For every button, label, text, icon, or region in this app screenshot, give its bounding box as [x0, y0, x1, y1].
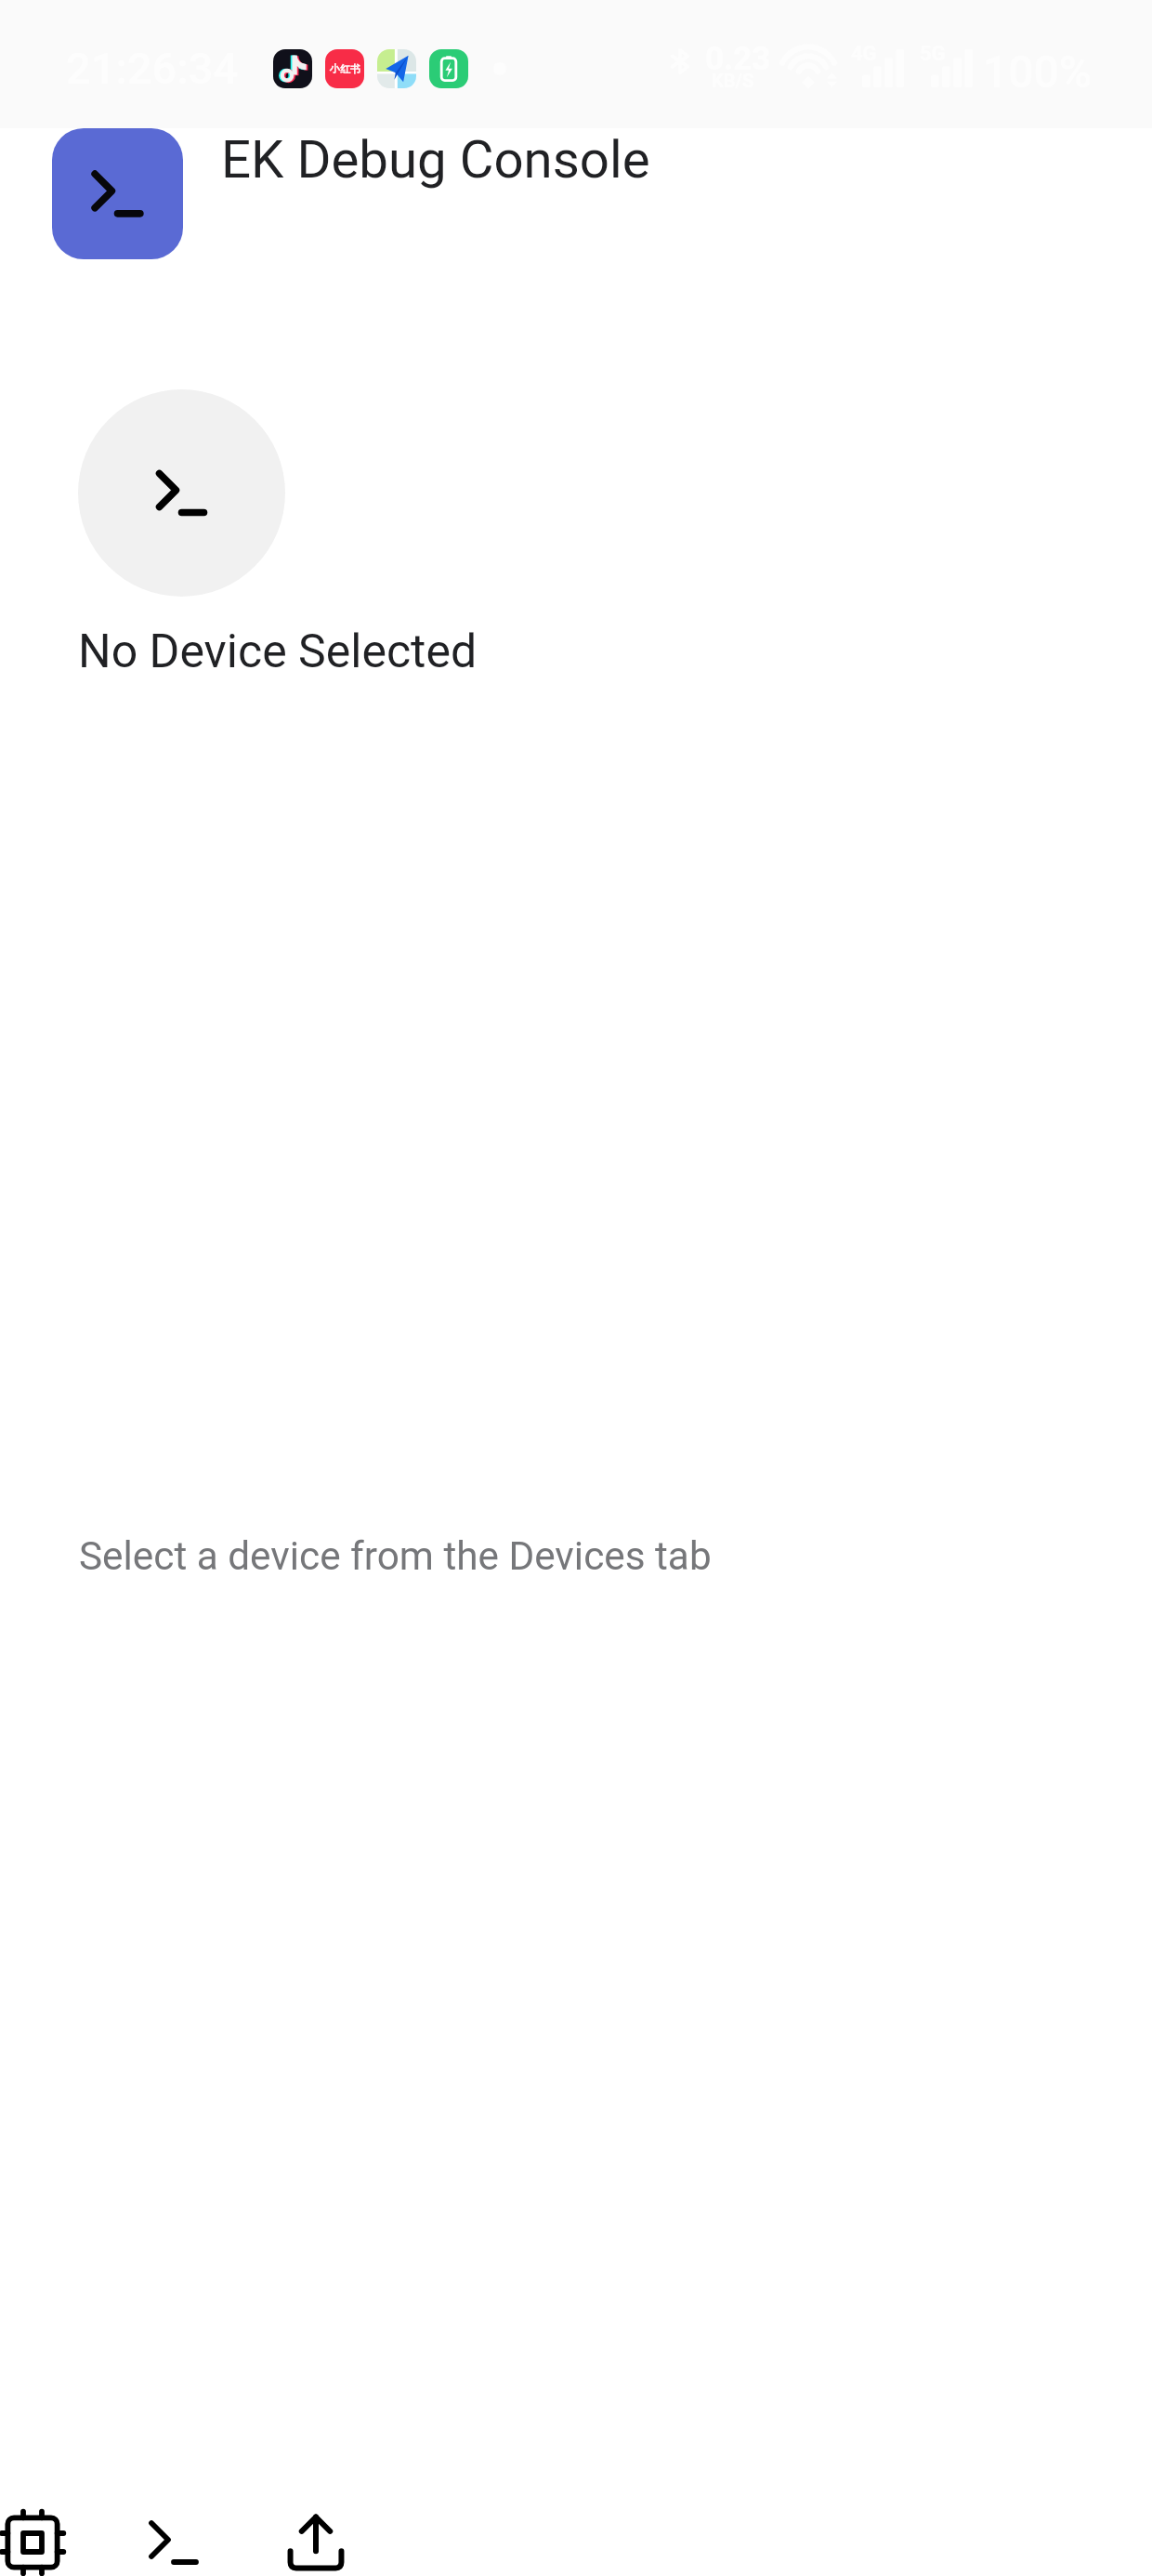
staticText: EK Debug Console	[221, 129, 650, 191]
button[interactable]: Devices	[0, 2483, 103, 2576]
staticText: 小红书	[330, 62, 360, 75]
button[interactable]: EK Debug Console	[52, 128, 183, 259]
button[interactable]: Upload	[244, 2483, 386, 2576]
staticText: No Device Selected	[78, 624, 478, 679]
button[interactable]: Console	[103, 2483, 244, 2576]
staticText: Select a device from the Devices tab	[79, 1533, 712, 1580]
